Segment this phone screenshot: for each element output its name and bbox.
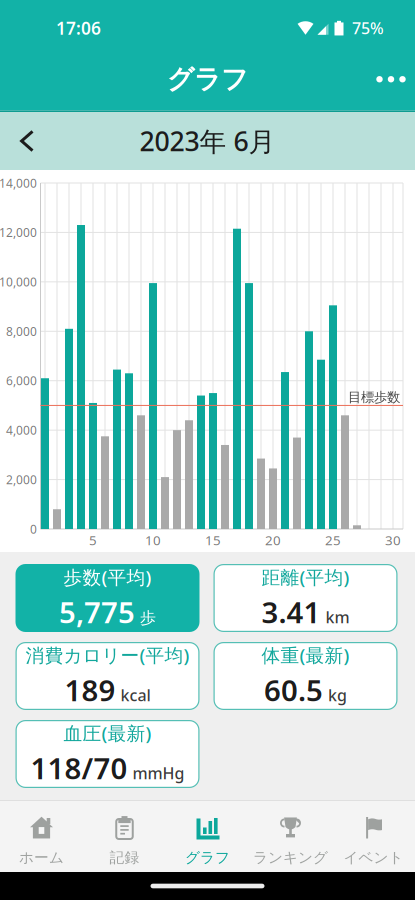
staticText: 118/70 <box>30 748 127 787</box>
staticText: 消費カロリー(平均) <box>25 643 189 667</box>
staticText: km <box>325 606 349 628</box>
staticText: 体重(最新) <box>261 643 349 667</box>
button[interactable]: 歩数(平均) <box>15 564 199 632</box>
staticText: 5,775 <box>59 592 135 631</box>
button[interactable]: More options <box>373 59 409 99</box>
staticText: 3.41 <box>261 592 320 631</box>
button[interactable]: 距離(平均) <box>213 564 397 632</box>
button[interactable]: 消費カロリー(平均) <box>15 642 199 710</box>
staticText: 8,000 <box>6 323 37 339</box>
staticText: 2023年 6月 <box>139 123 275 159</box>
staticText: 距離(平均) <box>261 565 349 589</box>
staticText: 17:06 <box>56 16 101 39</box>
staticText: 30 <box>385 531 401 549</box>
staticText: 血圧(最新) <box>63 721 151 745</box>
staticText: mmHg <box>132 762 184 784</box>
staticText: イベント <box>343 848 403 866</box>
staticText: 12,000 <box>0 224 37 240</box>
staticText: 歩 <box>140 608 156 628</box>
staticText: 記録 <box>109 848 139 866</box>
staticText: 5 <box>89 531 97 549</box>
button[interactable]: 血圧(最新) <box>15 720 199 788</box>
button[interactable]: イベント <box>332 801 415 872</box>
button[interactable]: Previous month <box>11 126 43 156</box>
button[interactable]: 記録 <box>83 801 166 872</box>
staticText: 14,000 <box>0 175 37 191</box>
staticText: グラフ <box>185 848 230 866</box>
button[interactable]: 体重(最新) <box>213 642 397 710</box>
button[interactable]: 2023年 6月 <box>67 112 347 170</box>
staticText: 10,000 <box>0 274 37 290</box>
button[interactable]: グラフ <box>166 801 249 872</box>
staticText: ホーム <box>19 848 64 866</box>
staticText: 歩数(平均) <box>63 565 151 589</box>
staticText: 20 <box>265 531 281 549</box>
staticText: 目標歩数 <box>348 389 400 406</box>
staticText: 2,000 <box>6 472 37 487</box>
staticText: kcal <box>120 684 150 706</box>
button[interactable]: ホーム <box>0 801 83 872</box>
staticText: 10 <box>145 531 161 549</box>
staticText: 60.5 <box>264 670 323 709</box>
staticText: kg <box>328 684 347 706</box>
staticText: 6,000 <box>6 373 37 389</box>
staticText: 25 <box>325 531 341 549</box>
button[interactable]: ランキング <box>249 801 332 872</box>
staticText: 0 <box>30 521 37 537</box>
staticText: 4,000 <box>6 422 37 438</box>
staticText: 75% <box>352 17 384 39</box>
staticText: グラフ <box>167 63 248 96</box>
staticText: 15 <box>205 531 221 549</box>
staticText: ランキング <box>253 848 328 866</box>
staticText: 189 <box>64 670 115 709</box>
